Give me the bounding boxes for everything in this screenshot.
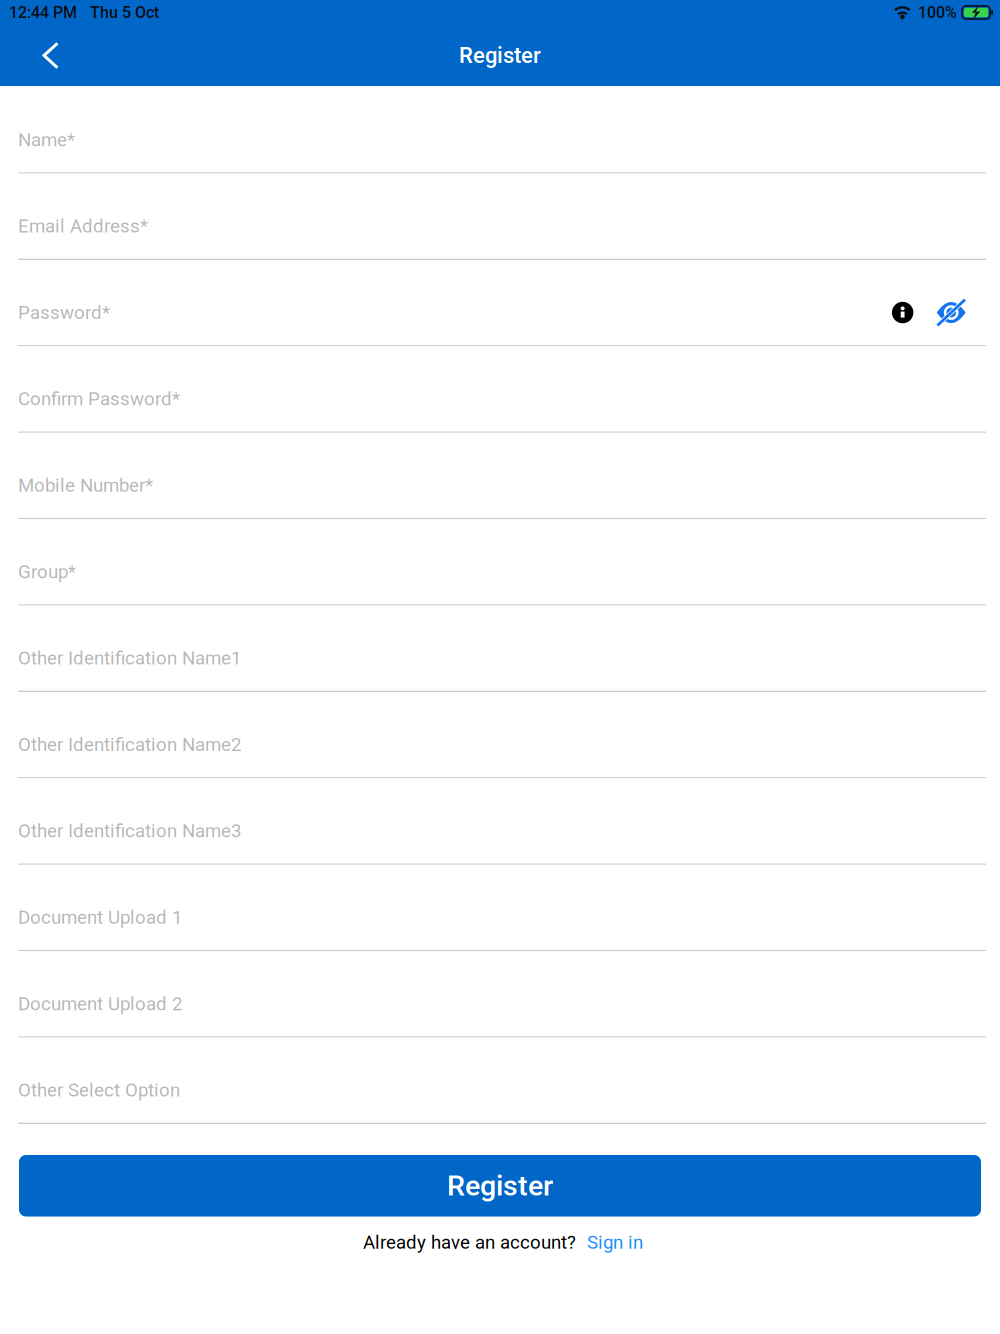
staticText: 100% <box>918 3 957 22</box>
button[interactable]: Register <box>19 1155 981 1216</box>
staticText: Document Upload 2 <box>18 993 182 1015</box>
staticText: Password* <box>18 302 110 323</box>
button[interactable]: Password requirements <box>892 298 913 327</box>
staticText: 12:44 PM <box>9 3 77 22</box>
staticText: Already have an account? <box>363 1231 576 1253</box>
staticText: Group* <box>18 561 76 583</box>
staticText: Register <box>459 43 541 68</box>
button[interactable]: Password* <box>18 260 986 346</box>
staticText: Sign in <box>587 1231 643 1253</box>
staticText: Other Identification Name3 <box>18 820 241 842</box>
staticText: Name* <box>18 129 75 151</box>
staticText: Email Address* <box>18 215 148 237</box>
button[interactable]: Document Upload 2 <box>18 951 986 1038</box>
staticText: Document Upload 1 <box>18 906 182 928</box>
button[interactable]: Other Identification Name3 <box>18 778 986 865</box>
button[interactable]: Confirm Password* <box>18 346 986 433</box>
button[interactable]: Back <box>27 28 74 83</box>
button[interactable]: Group* <box>18 519 986 606</box>
button[interactable]: Show password <box>913 298 986 327</box>
button[interactable]: Other Identification Name2 <box>18 692 986 778</box>
staticText: Thu 5 Oct <box>90 3 159 22</box>
button[interactable]: Other Identification Name1 <box>18 606 986 692</box>
staticText: Other Select Option <box>18 1079 180 1101</box>
button[interactable]: Document Upload 1 <box>18 865 986 951</box>
staticText: Mobile Number* <box>18 474 153 496</box>
button[interactable]: Mobile Number* <box>18 433 986 519</box>
staticText: Other Identification Name2 <box>18 734 241 755</box>
staticText: Confirm Password* <box>18 388 180 410</box>
staticText: Other Identification Name1 <box>18 647 241 669</box>
button[interactable]: Sign in <box>576 1231 643 1253</box>
button[interactable]: Email Address* <box>18 174 986 260</box>
button[interactable]: Name* <box>18 87 986 174</box>
staticText: Register <box>447 1169 553 1202</box>
button[interactable]: Other Select Option <box>18 1038 986 1124</box>
